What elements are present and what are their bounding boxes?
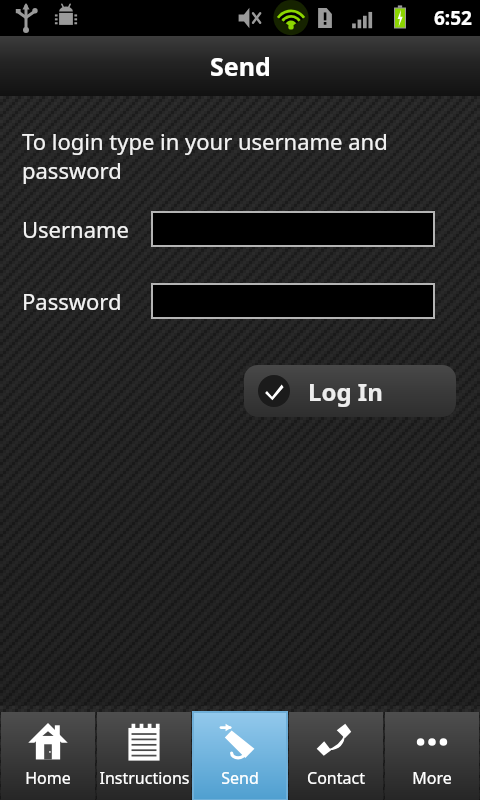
button[interactable]: Log In: [244, 365, 456, 417]
staticText: Home: [25, 767, 71, 789]
staticText: Contact: [307, 767, 365, 789]
staticText: Username: [22, 214, 151, 244]
button[interactable]: Home: [1, 712, 95, 800]
staticText: Send: [221, 767, 259, 789]
staticText: Password: [22, 286, 151, 316]
button[interactable]: Contact: [289, 712, 383, 800]
button[interactable]: More: [385, 712, 479, 800]
button[interactable]: Send: [193, 712, 287, 800]
button[interactable]: Instructions: [97, 712, 191, 800]
staticText: Instructions: [99, 767, 190, 789]
staticText: 6:52: [434, 5, 472, 31]
staticText: More: [412, 767, 452, 789]
staticText: Send: [210, 49, 271, 83]
staticText: To login type in your username and passw…: [22, 126, 458, 185]
staticText: Log In: [308, 375, 383, 408]
